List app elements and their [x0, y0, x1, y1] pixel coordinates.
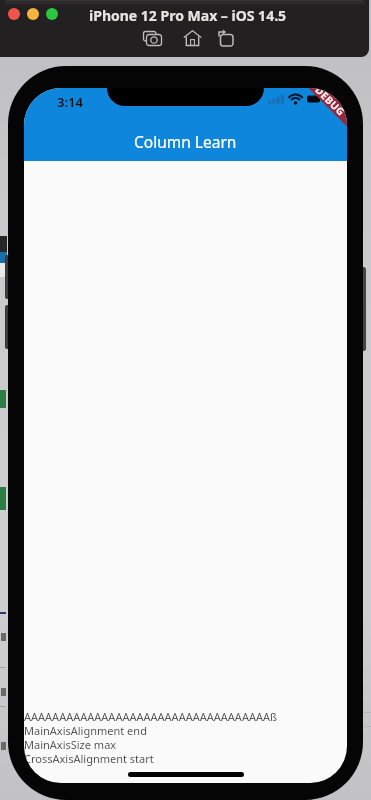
- button[interactable]: [8, 8, 20, 20]
- staticText: DEBUG: [312, 88, 347, 119]
- button[interactable]: [27, 8, 39, 20]
- button[interactable]: [46, 8, 58, 20]
- staticText: 3:14: [57, 93, 83, 111]
- button[interactable]: Rotate: [212, 25, 238, 51]
- button[interactable]: Screenshot: [139, 25, 165, 51]
- staticText: iPhone 12 Pro Max – iOS 14.5: [89, 6, 287, 25]
- button[interactable]: Home: [179, 25, 205, 51]
- staticText: AAAAAAAAAAAAAAAAAAAAAAAAAAAAAAAAAAAß Mai…: [24, 709, 277, 766]
- staticText: Column Learn: [134, 131, 237, 152]
